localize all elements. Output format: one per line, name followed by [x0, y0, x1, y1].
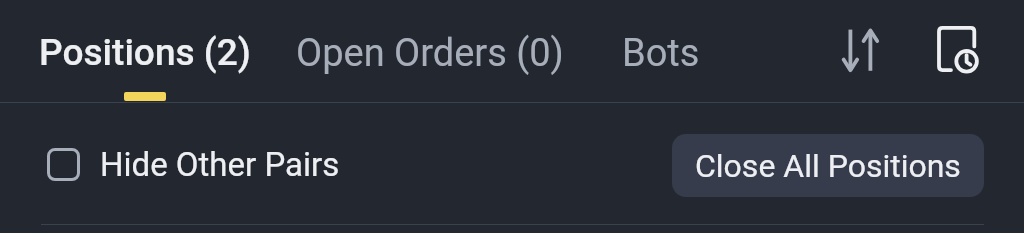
- button[interactable]: Bots: [600, 12, 722, 94]
- button[interactable]: Close All Positions: [672, 134, 984, 197]
- staticText: Open Orders (0): [296, 31, 564, 76]
- button[interactable]: Open Orders (0): [266, 12, 594, 94]
- staticText: Hide Other Pairs: [100, 145, 340, 184]
- button[interactable]: Sort: [826, 14, 894, 86]
- button[interactable]: Order history: [915, 14, 987, 86]
- staticText: Bots: [622, 31, 700, 76]
- button[interactable]: Positions (2): [20, 11, 269, 93]
- staticText: Close All Positions: [695, 147, 961, 185]
- staticText: Positions (2): [39, 31, 251, 74]
- button[interactable]: Hide Other Pairs: [38, 140, 350, 188]
